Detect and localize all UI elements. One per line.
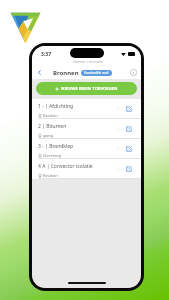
button[interactable]: 4 A | Convector isolatie [32,159,141,179]
button[interactable]: Bewerken [123,163,135,175]
staticText: 1 - | Afdichting [38,103,74,110]
button[interactable]: 1 - | Afdichting [32,99,141,119]
button[interactable]: Info [128,67,138,77]
staticText: Overloop [43,153,62,159]
staticText: Keuken [43,173,58,179]
staticText: Voorbeelde mail [84,71,109,75]
staticText: 4 A | Convector isolatie [38,163,93,170]
button[interactable]: Bewerken [123,123,135,135]
staticText: 2 | Bitumen [38,123,67,130]
staticText: TEST 001 | 20220409 [73,61,103,65]
staticText: NIEUWE BRON TOEVOEGEN [61,86,118,92]
staticText: Keuken [43,113,58,119]
button[interactable]: Bewerken [123,143,135,155]
staticText: 3:37 [41,51,51,58]
staticText: 3 - | Brandklep [38,143,74,150]
button[interactable]: 2 | Bitumen [32,119,141,139]
button[interactable]: Terug [34,67,44,77]
button[interactable]: NIEUWE BRON TOEVOEGEN [36,82,137,95]
button[interactable]: 3 - | Brandklep [32,139,141,159]
button[interactable]: Bewerken [123,103,135,115]
staticText: Bronnen [53,69,79,77]
staticText: gang [43,133,54,139]
